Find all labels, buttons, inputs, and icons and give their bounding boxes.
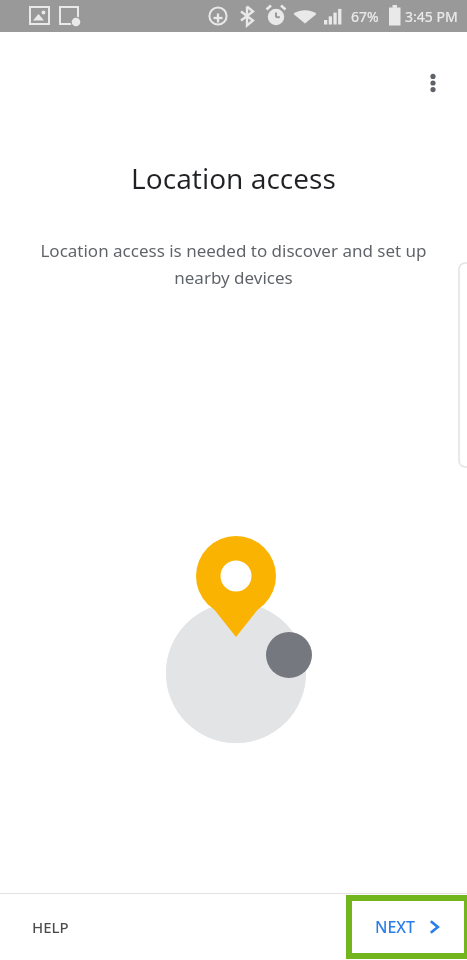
staticText: 3:45 PM [405, 7, 458, 26]
staticText: Location access is needed to discover an… [22, 239, 445, 289]
staticText: Location access [0, 159, 467, 197]
button[interactable]: NEXT [349, 898, 467, 956]
staticText: HELP [32, 917, 69, 937]
staticText: NEXT [375, 916, 416, 938]
button[interactable]: HELP [16, 907, 85, 947]
staticText: 67% [351, 7, 379, 26]
button[interactable]: More options [409, 59, 457, 107]
